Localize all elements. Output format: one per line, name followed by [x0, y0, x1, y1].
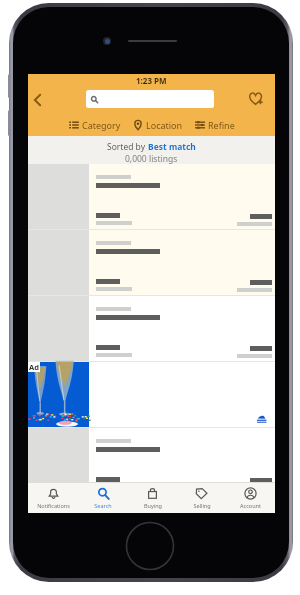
- staticText: Sorted by: [107, 141, 148, 153]
- button[interactable]: [28, 230, 275, 295]
- button[interactable]: Notifications: [28, 483, 78, 513]
- button[interactable]: Search: [78, 483, 128, 513]
- button[interactable]: Buying: [128, 483, 177, 513]
- staticText: 1:23 PM: [136, 75, 167, 86]
- staticText: Buying: [144, 502, 162, 509]
- staticText: Ad: [29, 362, 39, 372]
- staticText: Location: [146, 119, 183, 131]
- button[interactable]: [28, 164, 275, 229]
- button[interactable]: [28, 296, 275, 361]
- staticText: Search: [94, 502, 112, 509]
- staticText: Best match: [148, 141, 196, 153]
- button[interactable]: Selling: [177, 483, 226, 513]
- button[interactable]: Location: [133, 119, 183, 131]
- button[interactable]: Ad: [28, 362, 275, 427]
- staticText: Category: [82, 119, 121, 131]
- staticText: Notifications: [37, 502, 70, 509]
- button[interactable]: [86, 90, 214, 108]
- button[interactable]: [28, 428, 275, 482]
- button[interactable]: Save search: [246, 85, 266, 111]
- staticText: Account: [240, 502, 261, 509]
- button[interactable]: Back: [28, 87, 47, 113]
- button[interactable]: Category: [69, 119, 121, 131]
- staticText: 0,000 listings: [125, 153, 178, 164]
- staticText: Selling: [193, 502, 211, 509]
- staticText: Refine: [208, 119, 235, 131]
- button[interactable]: Refine: [195, 119, 235, 131]
- button[interactable]: Account: [226, 483, 275, 513]
